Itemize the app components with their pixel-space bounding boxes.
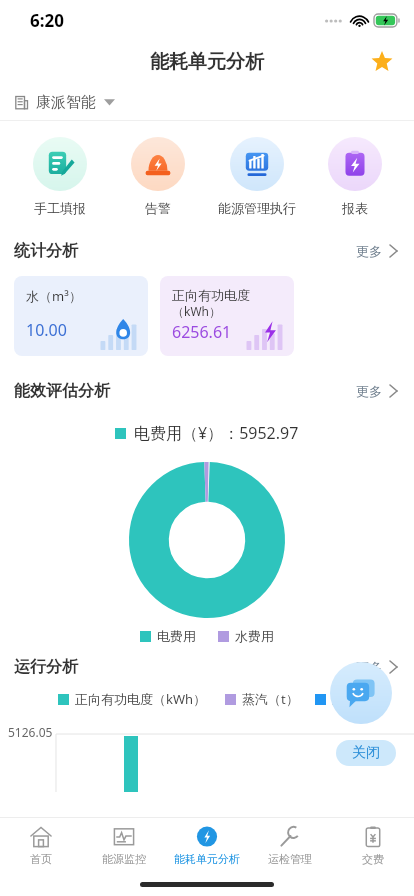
button[interactable]: 手工填报	[12, 135, 107, 218]
staticText: 水（m³）	[332, 690, 388, 708]
staticText: 能源监控	[102, 852, 146, 866]
staticText: 水（m³）	[26, 287, 82, 305]
staticText: 运行分析	[14, 657, 78, 677]
staticText: 交费	[362, 852, 384, 866]
staticText: 10.00	[26, 319, 67, 341]
staticText: 运检管理	[268, 852, 312, 866]
button[interactable]: 首页	[0, 818, 82, 872]
staticText: 更多	[356, 243, 382, 259]
button[interactable]: 正向有功电度	[160, 276, 294, 356]
button[interactable]: 运检管理	[248, 818, 331, 872]
button[interactable]: Favorite	[364, 44, 400, 80]
staticText: 手工填报	[34, 200, 86, 216]
staticText: 统计分析	[14, 241, 78, 261]
staticText: 关闭	[352, 744, 380, 762]
button[interactable]: 更多	[346, 243, 400, 259]
staticText: 能源管理执行	[218, 200, 296, 216]
button[interactable]: 能源监控	[82, 818, 165, 872]
staticText: 首页	[30, 852, 52, 866]
staticText: 能耗单元分析	[150, 50, 264, 74]
staticText: 能效评估分析	[14, 381, 110, 401]
staticText: （kWh）	[172, 303, 221, 319]
staticText: 正向有功电度（kWh）	[75, 690, 207, 708]
staticText: 蒸汽（t）	[242, 690, 299, 708]
staticText: 电费用（¥）：5952.97	[134, 422, 299, 444]
button[interactable]: 更多	[346, 659, 400, 675]
button[interactable]: 康派智能	[0, 84, 414, 120]
staticText: 正向有功电度	[172, 287, 250, 303]
button[interactable]: 水（m³）	[14, 276, 148, 356]
button[interactable]: 交费	[331, 818, 414, 872]
staticText: 更多	[356, 659, 382, 675]
staticText: 报表	[342, 200, 368, 216]
staticText: 电费用	[157, 628, 196, 644]
staticText: 水费用	[235, 628, 274, 644]
staticText: 更多	[356, 383, 382, 399]
button[interactable]: 能源管理执行	[209, 135, 304, 218]
staticText: 康派智能	[36, 93, 96, 112]
staticText: 6:20	[30, 9, 64, 32]
staticText: 能耗单元分析	[174, 852, 240, 866]
button[interactable]: Chat	[330, 662, 392, 724]
staticText: 5126.05	[8, 724, 53, 740]
button[interactable]: 能耗单元分析	[165, 818, 248, 872]
button[interactable]: 报表	[307, 135, 402, 218]
button[interactable]: 更多	[346, 383, 400, 399]
staticText: 告警	[145, 200, 171, 216]
button[interactable]: 告警	[110, 135, 205, 218]
button[interactable]: 关闭	[336, 740, 396, 766]
staticText: 6256.61	[172, 321, 232, 343]
